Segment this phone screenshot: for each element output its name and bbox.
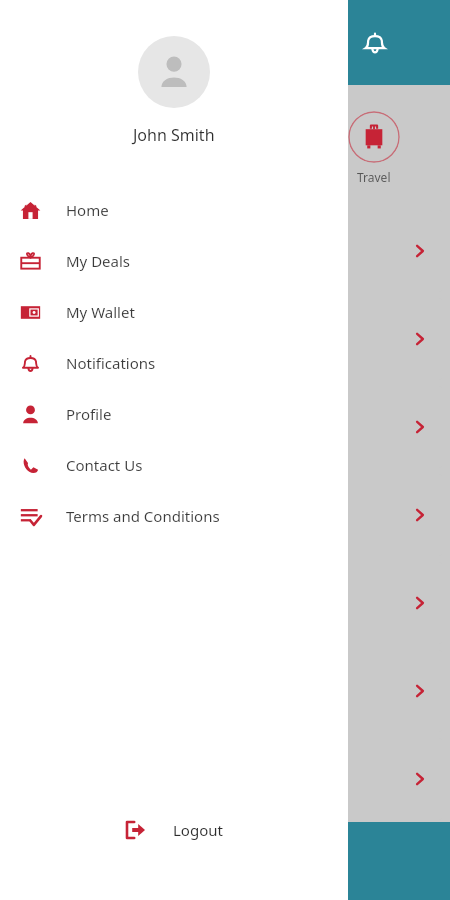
button[interactable]: Home [0, 184, 348, 235]
staticText: Contact Us [66, 455, 143, 475]
button[interactable]: Monthly [150, 298, 442, 380]
staticText: Notifications [66, 353, 156, 373]
staticText: My Wallet [66, 302, 135, 322]
staticText: Profile [66, 404, 112, 424]
button[interactable]: Logout [111, 810, 237, 850]
button[interactable]: Notifications [351, 19, 399, 67]
button[interactable]: Monthly [150, 386, 442, 468]
staticText: Terms and Conditions [66, 506, 220, 526]
button[interactable]: My Deals [0, 235, 348, 286]
button[interactable] [150, 562, 442, 644]
button[interactable] [138, 36, 210, 108]
staticText: Home [66, 200, 109, 220]
button[interactable]: Profile [0, 388, 348, 439]
button[interactable]: Contact Us [0, 439, 348, 490]
button[interactable]: Monthly [150, 210, 442, 292]
button[interactable] [348, 111, 400, 163]
staticText: My Deals [66, 251, 131, 271]
button[interactable] [150, 474, 442, 556]
button[interactable] [150, 650, 442, 732]
staticText: Travel [357, 169, 391, 185]
button[interactable]: My Wallet [0, 286, 348, 337]
button[interactable] [150, 738, 442, 820]
button[interactable]: Notifications [0, 337, 348, 388]
button[interactable]: Terms and Conditions [0, 490, 348, 541]
staticText: Logout [173, 820, 223, 840]
staticText: John Smith [133, 124, 215, 146]
